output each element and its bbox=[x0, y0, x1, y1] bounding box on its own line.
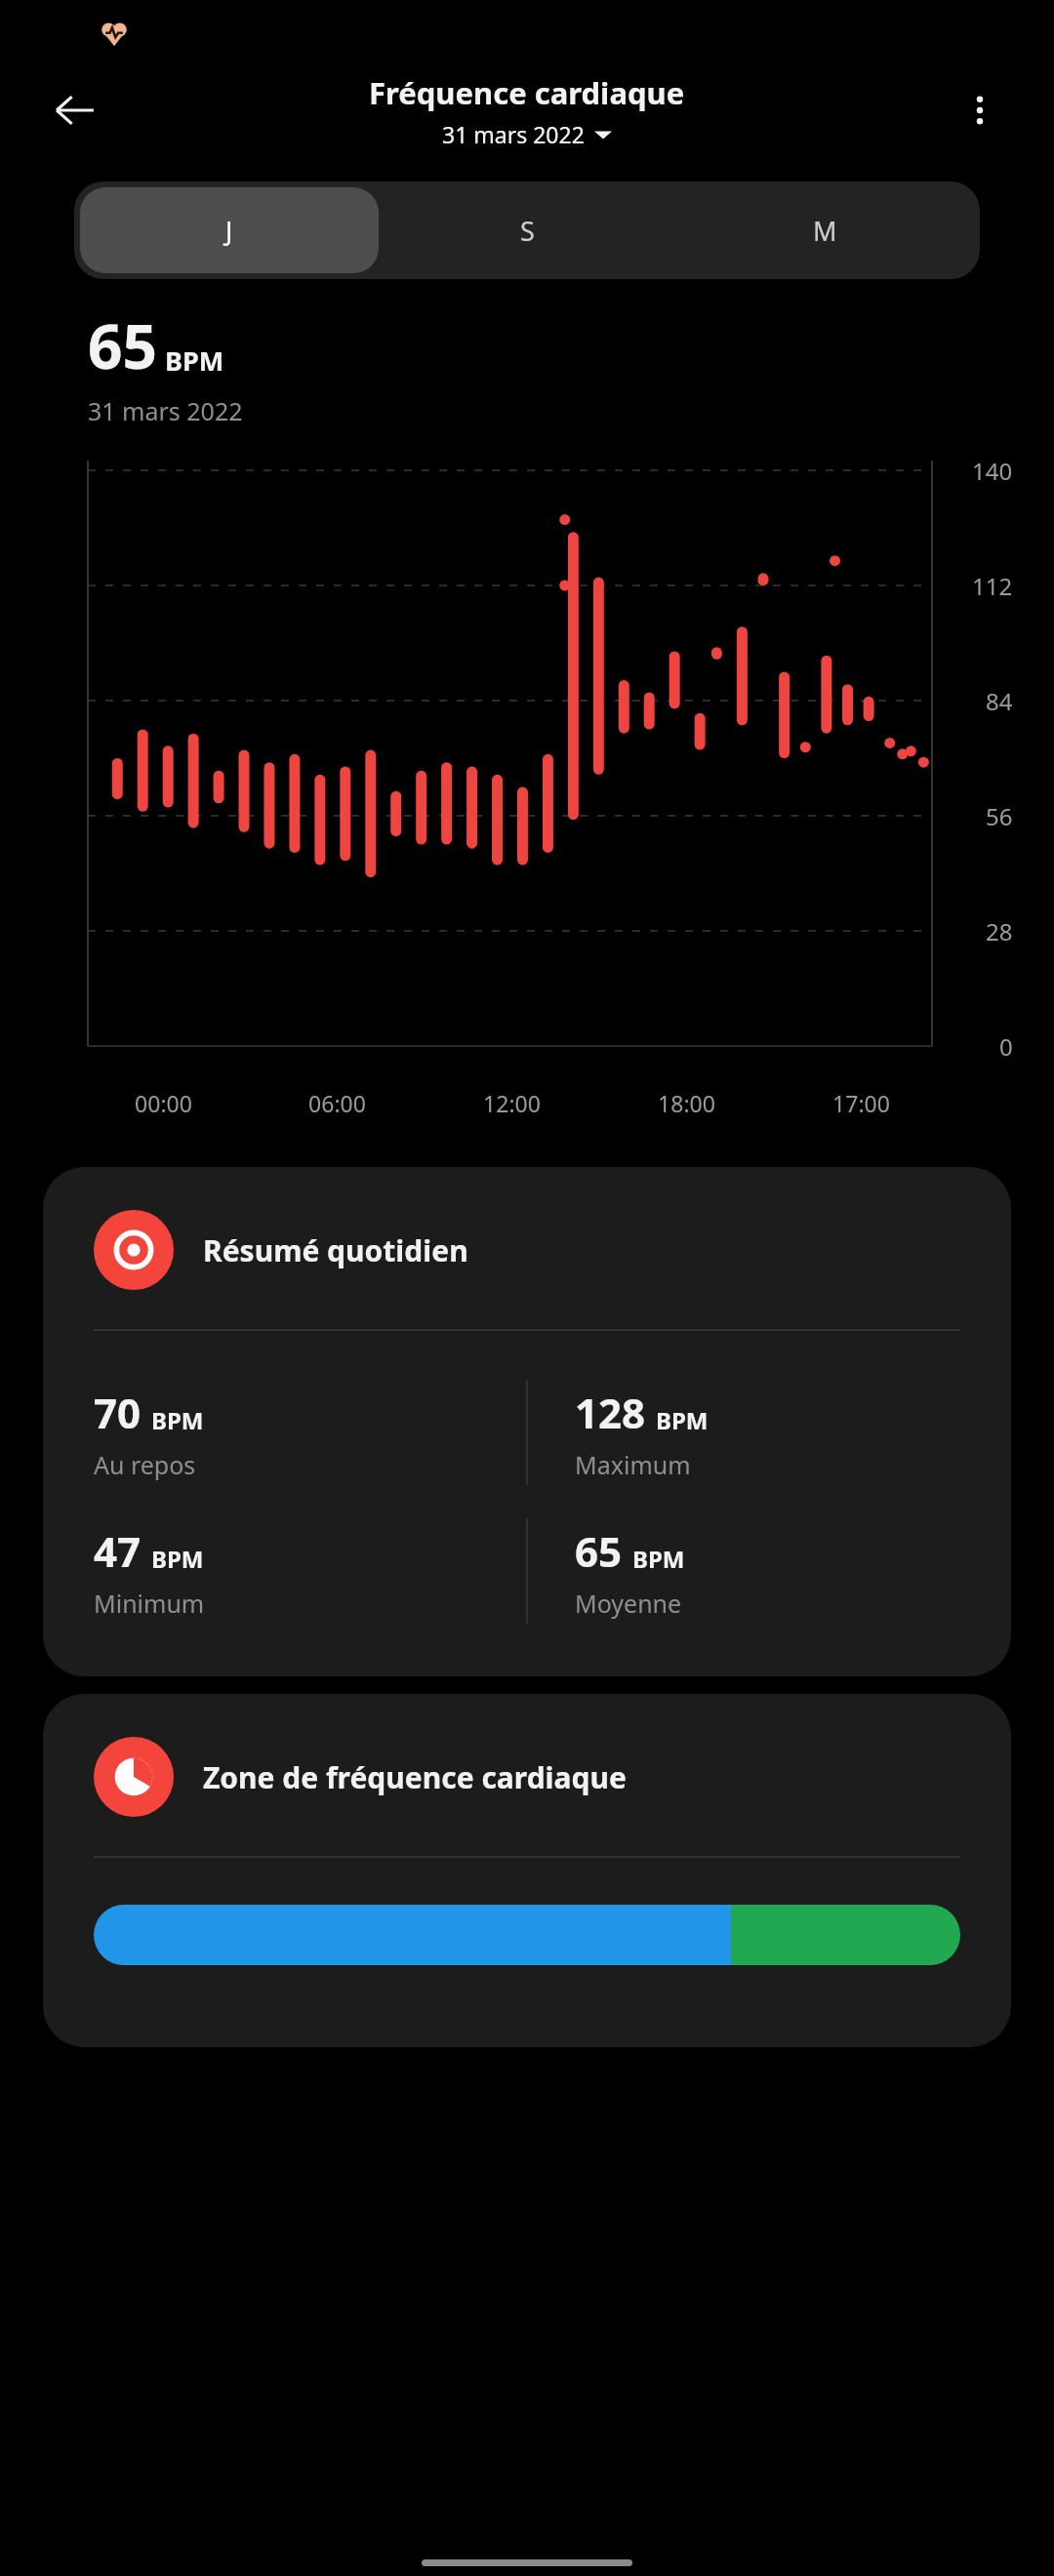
staticText: 56 bbox=[986, 800, 1013, 832]
staticText: 06:00 bbox=[308, 1088, 366, 1118]
staticText: 31 mars 2022 bbox=[442, 119, 585, 149]
button[interactable]: Back bbox=[45, 80, 105, 141]
staticText: S bbox=[520, 213, 535, 249]
staticText: Au repos bbox=[94, 1448, 196, 1481]
staticText: BPM bbox=[632, 1543, 685, 1575]
staticText: 28 bbox=[986, 915, 1013, 947]
staticText: 31 mars 2022 bbox=[88, 394, 243, 427]
staticText: 128 bbox=[575, 1385, 646, 1440]
staticText: Résumé quotidien bbox=[203, 1230, 468, 1270]
staticText: BPM bbox=[656, 1404, 709, 1436]
staticText: 17:00 bbox=[832, 1088, 890, 1118]
staticText: 70 bbox=[94, 1385, 142, 1440]
button[interactable]: M bbox=[676, 187, 974, 273]
staticText: BPM bbox=[165, 342, 224, 379]
staticText: BPM bbox=[151, 1543, 204, 1575]
button[interactable]: J bbox=[80, 187, 379, 273]
staticText: 65 bbox=[575, 1523, 623, 1579]
button[interactable]: 31 mars 2022 bbox=[442, 119, 612, 149]
staticText: 12:00 bbox=[483, 1088, 541, 1118]
staticText: 00:00 bbox=[135, 1088, 192, 1118]
staticText: BPM bbox=[151, 1404, 204, 1436]
button[interactable]: More options bbox=[951, 81, 1009, 140]
button[interactable]: Zone de fréquence cardiaque bbox=[43, 1694, 1011, 2047]
button[interactable]: Résumé quotidien bbox=[43, 1167, 1011, 1676]
staticText: 112 bbox=[972, 570, 1013, 602]
staticText: 47 bbox=[94, 1523, 142, 1579]
button[interactable]: S bbox=[379, 187, 676, 273]
staticText: 18:00 bbox=[658, 1088, 715, 1118]
staticText: Fréquence cardiaque bbox=[369, 72, 685, 113]
staticText: 65 bbox=[88, 304, 157, 386]
staticText: Minimum bbox=[94, 1587, 205, 1620]
staticText: M bbox=[813, 213, 837, 249]
staticText: Moyenne bbox=[575, 1587, 682, 1620]
staticText: Zone de fréquence cardiaque bbox=[203, 1757, 627, 1797]
staticText: J bbox=[225, 213, 233, 249]
staticText: 0 bbox=[999, 1030, 1013, 1063]
staticText: 84 bbox=[986, 685, 1013, 717]
staticText: 140 bbox=[972, 455, 1013, 487]
staticText: Maximum bbox=[575, 1448, 691, 1481]
